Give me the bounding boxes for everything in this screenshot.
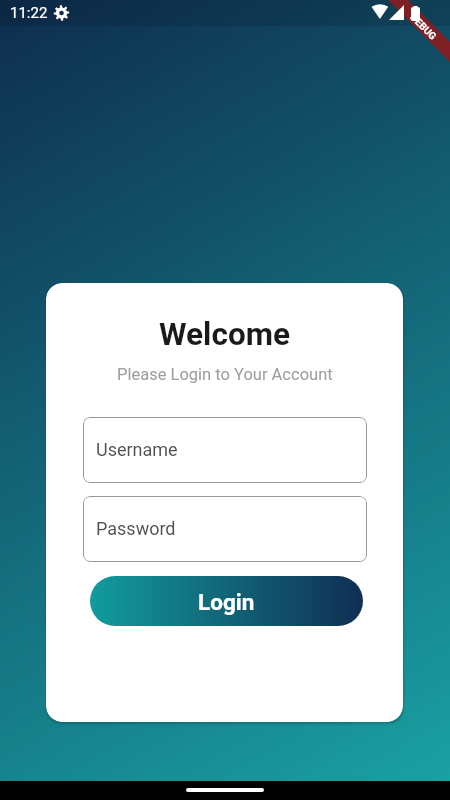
staticText: DEBUG (407, 11, 438, 42)
button[interactable]: Username (83, 417, 367, 483)
button[interactable]: Password (83, 496, 367, 562)
staticText: Please Login to Your Account (117, 365, 333, 384)
other: Settings (54, 5, 69, 21)
staticText: Login (198, 589, 255, 615)
staticText: Username (96, 439, 178, 460)
button[interactable]: Login (90, 576, 363, 626)
staticText: Welcome (159, 316, 291, 353)
staticText: Password (96, 518, 176, 539)
staticText: 11:22 (10, 4, 48, 22)
